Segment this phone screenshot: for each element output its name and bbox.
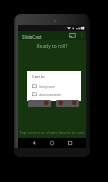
button[interactable]: Device thumbnail xyxy=(56,100,79,107)
staticText: SlideCast xyxy=(22,34,42,40)
button[interactable]: xbox.mainroom xyxy=(32,92,81,97)
button[interactable]: living room xyxy=(32,84,81,89)
staticText: Cast to xyxy=(32,74,45,79)
button[interactable]: More options xyxy=(79,31,86,40)
button[interactable]: Cast xyxy=(68,31,77,40)
staticText: xbox.mainroom xyxy=(39,93,62,97)
staticText: living room xyxy=(39,85,55,89)
staticText: Tap screen or shake device to cast xyxy=(18,130,86,136)
staticText: Ready to roll? xyxy=(18,43,86,50)
button[interactable]: Device thumbnail xyxy=(28,100,51,107)
